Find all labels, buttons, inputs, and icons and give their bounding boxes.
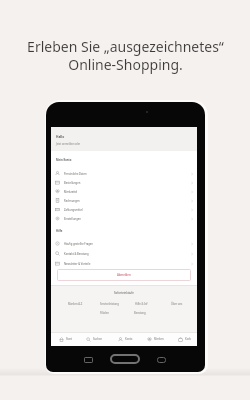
button[interactable]: Home: [110, 354, 140, 364]
button[interactable]: Filialen: [100, 311, 109, 315]
button[interactable]: Abmelden: [57, 269, 191, 281]
staticText: Hilfe: [56, 229, 63, 233]
button[interactable]: Korb: [177, 332, 192, 346]
staticText: Marken A-Z: [68, 302, 83, 306]
button[interactable]: Back: [157, 357, 166, 363]
staticText: Merken: [154, 337, 164, 341]
button[interactable]: Hilfe & Inf: [135, 302, 148, 306]
staticText: Rechnungen: [64, 199, 80, 203]
staticText: Über uns: [171, 302, 183, 306]
button[interactable]: Start: [58, 332, 73, 346]
staticText: Häufig gestellte Fragen: [64, 242, 93, 246]
staticText: Newsletter & Vorteile: [64, 262, 91, 266]
button[interactable]: Kontakt & Beratung: [51, 249, 197, 258]
staticText: Serviceleistung: [100, 302, 119, 306]
button[interactable]: Beratung: [134, 311, 146, 315]
button[interactable]: Marken A-Z: [68, 302, 83, 306]
button[interactable]: Serviceleistung: [100, 302, 119, 306]
button[interactable]: Bestellungen: [51, 178, 197, 187]
staticText: Persönliche Daten: [64, 172, 87, 176]
button[interactable]: Rechnungen: [51, 196, 197, 205]
staticText: Beratung: [134, 311, 146, 315]
staticText: Zahlungsmittel: [64, 208, 83, 212]
staticText: Einstellungen: [64, 217, 81, 221]
button[interactable]: Merkzettel: [51, 187, 197, 196]
staticText: Konto: [125, 337, 133, 341]
staticText: Merkzettel: [64, 190, 78, 194]
button[interactable]: Über uns: [171, 302, 183, 306]
button[interactable]: Häufig gestellte Fragen: [51, 239, 197, 248]
button[interactable]: Einstellungen: [51, 214, 197, 223]
button[interactable]: Suchen: [85, 332, 104, 346]
button[interactable]: Merken: [146, 332, 165, 346]
staticText: Hilfe & Inf: [135, 302, 148, 306]
button[interactable]: Recent apps: [84, 357, 93, 363]
staticText: Erleben Sie „ausgezeichnetes“ Online-Sho…: [27, 37, 224, 74]
staticText: Soforteinkäufe: [114, 291, 134, 295]
staticText: Jetzt anmelden oder: [56, 142, 81, 145]
staticText: Mein Konto: [56, 158, 72, 162]
button[interactable]: Zahlungsmittel: [51, 205, 197, 214]
staticText: Hallo: [56, 135, 65, 139]
staticText: Abmelden: [117, 273, 131, 277]
button[interactable]: Konto: [117, 332, 134, 346]
staticText: Kontakt & Beratung: [64, 252, 89, 256]
staticText: Korb: [185, 337, 191, 341]
staticText: Start: [66, 337, 72, 341]
button[interactable]: Persönliche Daten: [51, 169, 197, 178]
button[interactable]: Newsletter & Vorteile: [51, 259, 197, 268]
staticText: Filialen: [100, 311, 109, 315]
staticText: Suchen: [93, 337, 103, 341]
staticText: Bestellungen: [64, 181, 81, 185]
